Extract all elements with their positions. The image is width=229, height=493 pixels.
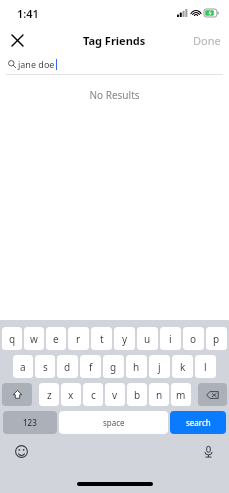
- button[interactable]: Shift: [2, 383, 32, 406]
- staticText: j: [158, 360, 161, 374]
- staticText: z: [47, 388, 52, 402]
- staticText: a: [20, 360, 26, 374]
- staticText: x: [68, 388, 74, 402]
- staticText: i: [169, 332, 172, 346]
- button[interactable]: t: [91, 327, 112, 350]
- button[interactable]: h: [126, 355, 147, 378]
- button[interactable]: Dictate: [199, 442, 217, 460]
- staticText: e: [53, 332, 59, 346]
- staticText: f: [89, 360, 93, 374]
- staticText: h: [133, 360, 140, 374]
- button[interactable]: space: [59, 411, 168, 434]
- staticText: c: [91, 388, 96, 402]
- staticText: s: [43, 360, 48, 374]
- staticText: n: [156, 388, 163, 402]
- button[interactable]: e: [46, 327, 66, 350]
- staticText: o: [190, 332, 197, 346]
- button[interactable]: u: [137, 327, 158, 350]
- staticText: m: [176, 388, 186, 402]
- staticText: space: [103, 417, 125, 428]
- button[interactable]: g: [103, 355, 124, 378]
- staticText: u: [144, 332, 151, 346]
- staticText: b: [134, 388, 141, 402]
- button[interactable]: z: [39, 383, 59, 406]
- button[interactable]: c: [83, 383, 103, 406]
- staticText: search: [186, 417, 211, 428]
- button[interactable]: Close: [4, 27, 30, 53]
- staticText: jane doe: [18, 58, 55, 70]
- staticText: g: [110, 360, 117, 374]
- button[interactable]: jane doe: [0, 54, 229, 74]
- button[interactable]: search: [170, 411, 226, 434]
- button[interactable]: q: [2, 327, 22, 350]
- button[interactable]: k: [172, 355, 193, 378]
- button[interactable]: m: [171, 383, 191, 406]
- button[interactable]: v: [105, 383, 125, 406]
- button[interactable]: p: [206, 327, 227, 350]
- staticText: v: [112, 388, 118, 402]
- staticText: q: [9, 332, 16, 346]
- staticText: y: [122, 332, 128, 346]
- button[interactable]: Backspace: [198, 383, 227, 406]
- button[interactable]: f: [80, 355, 101, 378]
- button[interactable]: j: [149, 355, 170, 378]
- staticText: t: [100, 332, 104, 346]
- button[interactable]: i: [160, 327, 181, 350]
- staticText: Done: [193, 33, 221, 48]
- button[interactable]: w: [24, 327, 44, 350]
- staticText: w: [30, 332, 38, 346]
- staticText: d: [64, 360, 71, 374]
- staticText: 123: [23, 417, 37, 428]
- button[interactable]: d: [57, 355, 78, 378]
- staticText: l: [204, 360, 207, 374]
- button[interactable]: b: [127, 383, 147, 406]
- staticText: p: [213, 332, 220, 346]
- button[interactable]: r: [68, 327, 89, 350]
- staticText: Tag Friends: [83, 33, 146, 48]
- button[interactable]: x: [61, 383, 81, 406]
- staticText: k: [180, 360, 186, 374]
- staticText: r: [76, 332, 81, 346]
- button[interactable]: n: [149, 383, 169, 406]
- button[interactable]: y: [114, 327, 135, 350]
- staticText: No Results: [0, 88, 229, 102]
- button[interactable]: 123: [3, 411, 57, 434]
- button[interactable]: o: [183, 327, 204, 350]
- button[interactable]: s: [35, 355, 55, 378]
- button[interactable]: a: [13, 355, 33, 378]
- button[interactable]: Emoji: [12, 442, 30, 460]
- staticText: 1:41: [17, 6, 39, 21]
- button[interactable]: Done: [193, 33, 221, 48]
- button[interactable]: l: [195, 355, 216, 378]
